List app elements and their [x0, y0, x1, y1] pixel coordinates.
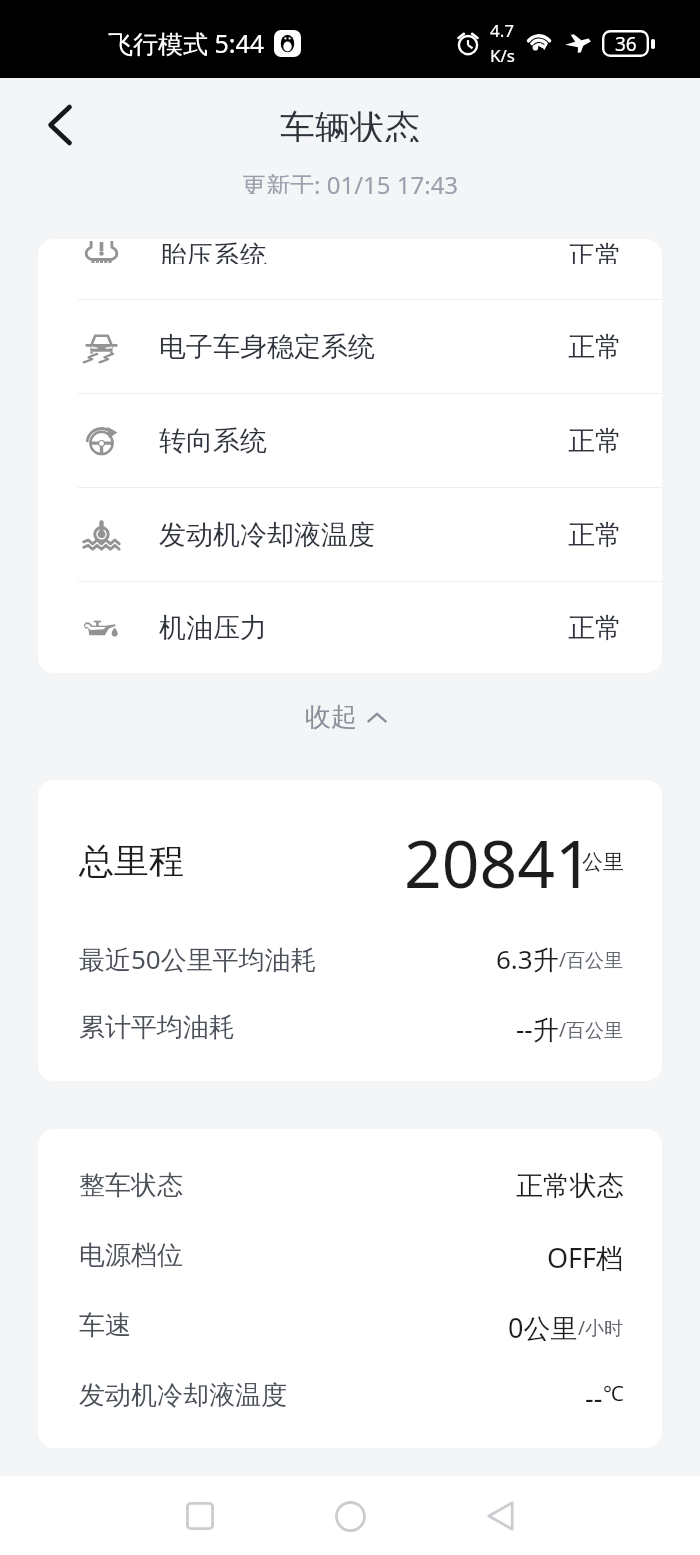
staticText: OFF档 [547, 1239, 624, 1271]
staticText: 总里程 [79, 839, 184, 883]
staticText: 正常 [568, 239, 622, 264]
staticText: 转向系统 [159, 424, 267, 458]
staticText: 20841 [404, 817, 593, 895]
staticText: 正常状态 [516, 1169, 624, 1201]
staticText: /百公里 [559, 1017, 624, 1043]
staticText: K/s [490, 44, 515, 67]
staticText: 发动机冷却液温度 [79, 1379, 287, 1411]
staticText: 公里 [582, 849, 624, 875]
staticText: /百公里 [559, 947, 624, 973]
staticText: 收起 [305, 701, 357, 734]
staticText: 最近50公里平均油耗 [79, 941, 317, 973]
staticText: 正常 [568, 424, 622, 458]
button[interactable]: 电子车身稳定系统 [38, 300, 662, 393]
button[interactable]: 收起 [281, 691, 411, 744]
staticText: 机油压力 [159, 611, 267, 645]
staticText: 正常 [568, 611, 622, 645]
button[interactable]: 胎压系统 [38, 239, 662, 299]
staticText: 0公里 [508, 1309, 578, 1341]
staticText: 发动机冷却液温度 [159, 518, 375, 552]
staticText: 36 [615, 31, 637, 57]
staticText: 正常 [568, 518, 622, 552]
button[interactable]: 机油压力 [38, 582, 662, 673]
staticText: -- [585, 1379, 603, 1411]
staticText: 电子车身稳定系统 [159, 330, 375, 364]
staticText: 6.3升 [496, 941, 559, 973]
staticText: 整车状态 [79, 1169, 183, 1201]
staticText: 车辆状态 [280, 106, 420, 142]
staticText: 正常 [568, 330, 622, 364]
button[interactable]: Recent apps [158, 1483, 242, 1549]
button[interactable]: 转向系统 [38, 394, 662, 487]
staticText: 累计平均油耗 [79, 1011, 235, 1043]
staticText: 更新于: 01/15 17:43 [242, 168, 459, 194]
staticText: 车速 [79, 1309, 131, 1341]
button[interactable]: 发动机冷却液温度 [38, 488, 662, 581]
button[interactable]: Back [32, 98, 86, 152]
staticText: /小时 [578, 1315, 624, 1341]
staticText: --升 [516, 1011, 559, 1043]
button[interactable]: Home [308, 1483, 392, 1549]
staticText: ℃ [603, 1379, 624, 1408]
staticText: 4.7 [490, 19, 515, 42]
button[interactable]: Back [458, 1483, 542, 1549]
staticText: 胎压系统 [159, 239, 267, 264]
staticText: 飞行模式 5:44 [108, 26, 265, 60]
staticText: 电源档位 [79, 1239, 183, 1271]
